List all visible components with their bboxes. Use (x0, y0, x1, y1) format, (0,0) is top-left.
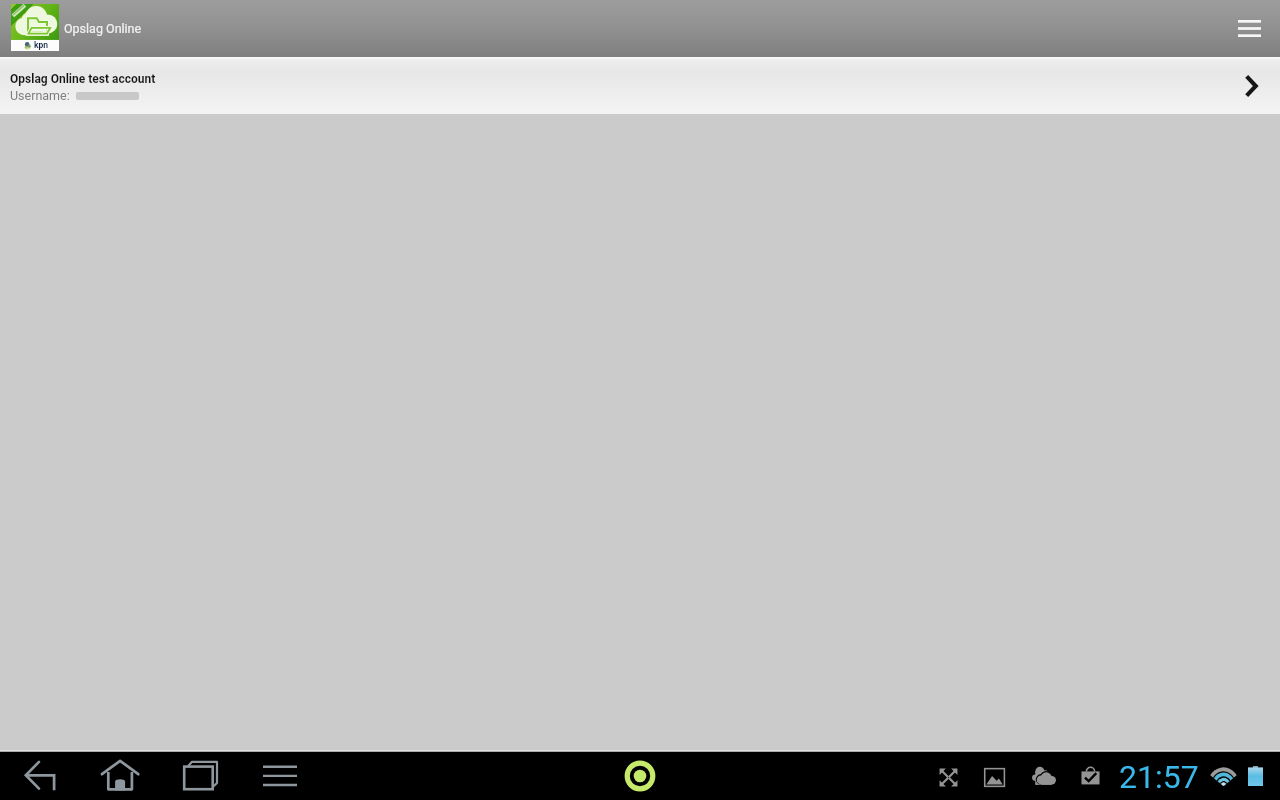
staticText: Opslag Online (64, 21, 142, 36)
button[interactable]: Menu (1224, 0, 1274, 57)
button[interactable]: Opslag Online test account (0, 57, 1280, 114)
button[interactable]: Menu (240, 752, 320, 800)
button[interactable]: Fullscreen (933, 752, 964, 800)
button[interactable]: Play Store (1075, 752, 1106, 800)
button[interactable]: Recent apps (160, 752, 240, 800)
button[interactable]: Screenshot (978, 752, 1011, 800)
staticText: kpn (34, 40, 49, 50)
button[interactable]: Home (80, 752, 160, 800)
button[interactable]: Screen recording (620, 752, 660, 800)
staticText: Username: (10, 88, 70, 103)
button[interactable]: Cloud sync (1026, 752, 1060, 800)
staticText: 21:57 (1119, 758, 1199, 796)
button[interactable]: Open account (1230, 57, 1272, 114)
button[interactable]: Back (0, 752, 80, 800)
staticText: Opslag Online test account (10, 72, 156, 86)
